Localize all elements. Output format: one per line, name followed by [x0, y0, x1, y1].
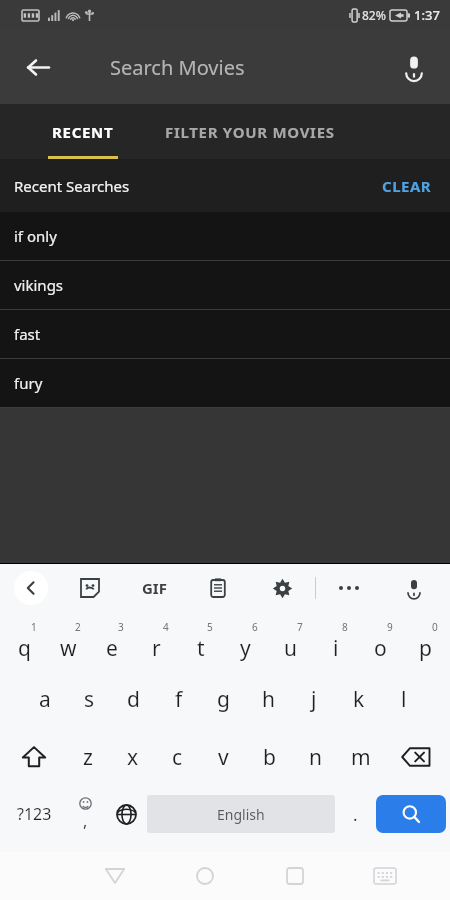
button[interactable]: j [291, 670, 336, 728]
button[interactable]: Shift [2, 728, 65, 786]
button[interactable]: Stickers [58, 564, 122, 612]
button[interactable]: s [67, 670, 111, 728]
button[interactable]: Change language [106, 786, 147, 842]
staticText: 2 [75, 620, 81, 634]
button[interactable]: RECENT [0, 104, 165, 159]
staticText: RECENT [52, 122, 114, 142]
staticText: j [311, 685, 317, 714]
staticText: l [401, 685, 407, 714]
staticText: 6 [252, 620, 258, 634]
staticText: ?123 [17, 803, 52, 825]
button[interactable]: Close toolbar [4, 564, 58, 612]
staticText: 7 [297, 620, 303, 634]
staticText: . [353, 803, 358, 826]
button[interactable]: Voice search [390, 43, 438, 91]
staticText: CLEAR [382, 176, 432, 196]
staticText: g [217, 685, 230, 714]
button[interactable]: if only [0, 212, 450, 261]
button[interactable]: n [292, 728, 338, 786]
staticText: y [240, 634, 251, 663]
button[interactable]: 8 [313, 612, 358, 670]
button[interactable]: Clipboard [186, 564, 250, 612]
button[interactable]: vikings [0, 261, 450, 310]
button[interactable]: 4 [134, 612, 178, 670]
button[interactable]: 1 [2, 612, 46, 670]
staticText: Search Movies [110, 54, 245, 81]
staticText: c [172, 743, 183, 772]
button[interactable]: 0 [403, 612, 448, 670]
button[interactable]: CLEAR [372, 170, 442, 202]
staticText: e [106, 634, 118, 663]
button[interactable]: g [201, 670, 246, 728]
button[interactable]: Home [160, 852, 250, 900]
staticText: FILTER YOUR MOVIES [165, 122, 335, 142]
staticText: fast [14, 324, 41, 344]
staticText: w [60, 634, 77, 663]
staticText: English [217, 805, 265, 824]
button[interactable]: c [155, 728, 200, 786]
staticText: a [39, 685, 51, 714]
button[interactable]: 3 [90, 612, 134, 670]
staticText: 0 [432, 620, 438, 634]
button[interactable]: Back [70, 852, 160, 900]
staticText: 5 [207, 620, 213, 634]
staticText: 1 [31, 620, 37, 634]
staticText: m [351, 743, 371, 772]
button[interactable]: m [338, 728, 384, 786]
staticText: v [218, 743, 229, 772]
button[interactable]: b [246, 728, 292, 786]
button[interactable]: 9 [358, 612, 403, 670]
staticText: 82% [362, 7, 386, 23]
staticText: q [18, 634, 31, 663]
staticText: z [83, 743, 93, 772]
button[interactable]: a [23, 670, 67, 728]
staticText: , [83, 810, 88, 832]
staticText: s [84, 685, 95, 714]
staticText: u [284, 634, 297, 663]
staticText: o [374, 634, 387, 663]
button[interactable]: Hide keyboard [340, 852, 430, 900]
button[interactable]: x [110, 728, 155, 786]
button[interactable]: h [246, 670, 291, 728]
button[interactable]: fury [0, 359, 450, 408]
staticText: Recent Searches [14, 176, 130, 196]
staticText: b [263, 743, 276, 772]
staticText: 8 [342, 620, 348, 634]
button[interactable]: Voice input [381, 564, 446, 612]
button[interactable]: Search [376, 795, 446, 833]
button[interactable]: f [156, 670, 201, 728]
staticText: p [419, 634, 432, 663]
button[interactable]: 7 [268, 612, 313, 670]
staticText: t [197, 634, 205, 663]
button[interactable]: 5 [178, 612, 223, 670]
button[interactable]: Settings [250, 564, 315, 612]
button[interactable]: FILTER YOUR MOVIES [165, 104, 450, 159]
button[interactable]: . [335, 786, 376, 842]
staticText: i [333, 634, 339, 663]
button[interactable]: k [336, 670, 381, 728]
staticText: 3 [118, 620, 124, 634]
button[interactable]: Recents [250, 852, 340, 900]
staticText: fury [14, 373, 43, 393]
staticText: r [152, 634, 161, 663]
button[interactable]: 6 [223, 612, 268, 670]
staticText: n [309, 743, 322, 772]
button[interactable]: ?123 [4, 786, 65, 842]
button[interactable]: GIF [122, 564, 186, 612]
button[interactable]: Back [12, 41, 64, 93]
button[interactable]: z [65, 728, 110, 786]
button[interactable]: d [111, 670, 156, 728]
staticText: k [353, 685, 365, 714]
button[interactable]: 2 [46, 612, 90, 670]
button[interactable]: More options [316, 564, 381, 612]
staticText: 9 [387, 620, 393, 634]
button[interactable]: Emoji and comma [65, 786, 106, 842]
staticText: 1:37 [414, 6, 440, 24]
button[interactable]: l [381, 670, 426, 728]
button[interactable]: Backspace [384, 728, 448, 786]
staticText: f [175, 685, 183, 714]
button[interactable]: English [147, 795, 335, 833]
button[interactable]: fast [0, 310, 450, 359]
staticText: x [127, 743, 139, 772]
button[interactable]: v [200, 728, 246, 786]
